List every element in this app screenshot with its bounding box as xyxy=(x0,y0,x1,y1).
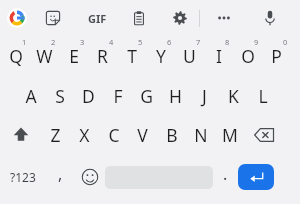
button[interactable]: S xyxy=(45,76,74,115)
staticText: 6 xyxy=(167,37,172,47)
button[interactable]: GIF xyxy=(84,5,110,31)
staticText: 7 xyxy=(196,37,201,47)
button[interactable]: Voice input xyxy=(259,7,281,29)
staticText: 2 xyxy=(51,37,56,47)
staticText: U xyxy=(183,44,196,68)
button[interactable]: M xyxy=(215,115,244,154)
button[interactable]: Settings xyxy=(169,7,191,29)
button[interactable]: I xyxy=(204,36,233,76)
staticText: A xyxy=(25,84,37,108)
button[interactable]: L xyxy=(248,76,277,115)
button[interactable]: Emoji xyxy=(75,160,105,194)
button[interactable]: C xyxy=(99,115,128,154)
button[interactable]: K xyxy=(219,76,248,115)
button[interactable]: W xyxy=(30,36,59,76)
button[interactable]: Z xyxy=(41,115,70,154)
button[interactable]: V xyxy=(128,115,157,154)
button[interactable]: X xyxy=(70,115,99,154)
button[interactable]: D xyxy=(74,76,103,115)
staticText: N xyxy=(194,123,208,147)
staticText: 5 xyxy=(138,37,143,47)
button[interactable]: Google search xyxy=(6,7,28,29)
staticText: 3 xyxy=(80,37,85,47)
staticText: P xyxy=(271,44,282,68)
button[interactable]: P xyxy=(262,36,291,76)
button[interactable]: Y xyxy=(146,36,175,76)
staticText: Z xyxy=(50,123,61,147)
button[interactable]: Backspace xyxy=(244,115,285,154)
button[interactable]: T xyxy=(117,36,146,76)
staticText: O xyxy=(241,44,255,68)
staticText: 1 xyxy=(22,37,27,47)
staticText: C xyxy=(108,123,120,147)
staticText: G xyxy=(140,84,153,108)
button[interactable]: Shift xyxy=(0,115,41,154)
button[interactable]: N xyxy=(186,115,215,154)
button[interactable]: F xyxy=(103,76,132,115)
staticText: S xyxy=(55,84,65,108)
staticText: H xyxy=(169,84,182,108)
staticText: L xyxy=(258,84,268,108)
staticText: 9 xyxy=(254,37,259,47)
button[interactable]: U xyxy=(175,36,204,76)
staticText: K xyxy=(228,84,239,108)
button[interactable]: O xyxy=(233,36,262,76)
staticText: GIF xyxy=(88,11,107,26)
staticText: D xyxy=(82,84,95,108)
button[interactable]: B xyxy=(157,115,186,154)
staticText: V xyxy=(137,123,148,147)
button[interactable]: A xyxy=(16,76,45,115)
staticText: W xyxy=(36,44,53,68)
button[interactable]: Q xyxy=(1,36,30,76)
button[interactable]: ?123 xyxy=(0,160,46,194)
button[interactable]: G xyxy=(132,76,161,115)
button[interactable]: R xyxy=(88,36,117,76)
staticText: T xyxy=(127,44,137,68)
button[interactable]: Clipboard xyxy=(128,7,150,29)
staticText: J xyxy=(202,84,207,108)
staticText: B xyxy=(166,123,178,147)
staticText: Q xyxy=(9,44,23,68)
staticText: , xyxy=(58,163,63,185)
staticText: Y xyxy=(156,44,166,68)
button[interactable]: More options xyxy=(213,7,235,29)
staticText: R xyxy=(97,44,108,68)
staticText: E xyxy=(69,44,79,68)
button[interactable]: H xyxy=(161,76,190,115)
staticText: M xyxy=(222,123,238,147)
staticText: F xyxy=(113,84,123,108)
button[interactable]: . xyxy=(213,160,238,194)
staticText: ?123 xyxy=(10,169,36,185)
staticText: 0 xyxy=(283,37,288,47)
button[interactable]: Stickers xyxy=(43,8,63,28)
button[interactable]: , xyxy=(46,160,75,194)
button[interactable]: Enter xyxy=(238,164,274,190)
staticText: 4 xyxy=(109,37,114,47)
staticText: X xyxy=(79,123,90,147)
staticText: I xyxy=(216,44,222,68)
staticText: . xyxy=(223,163,228,185)
staticText: 8 xyxy=(225,37,230,47)
button[interactable]: J xyxy=(190,76,219,115)
button[interactable]: E xyxy=(59,36,88,76)
